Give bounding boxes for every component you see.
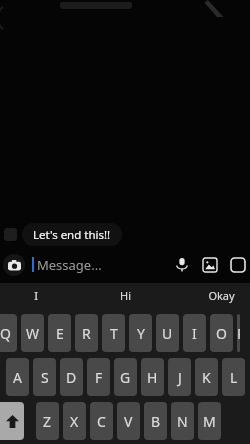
button[interactable]: P [237, 314, 240, 352]
button[interactable]: F [87, 358, 110, 396]
button[interactable]: K [195, 358, 218, 396]
button[interactable]: Okay [198, 283, 244, 308]
button[interactable]: J [168, 358, 191, 396]
staticText: Message... [37, 256, 102, 274]
button[interactable]: Voice message [170, 253, 194, 277]
staticText: G [120, 368, 131, 387]
button[interactable]: G [114, 358, 137, 396]
staticText: M [203, 412, 216, 431]
staticText: Z [43, 412, 52, 431]
button[interactable]: I [14, 283, 58, 308]
staticText: B [151, 412, 161, 431]
staticText: Okay [208, 288, 235, 303]
button[interactable]: S [33, 358, 56, 396]
button[interactable]: A [6, 358, 29, 396]
staticText: I [192, 324, 197, 343]
staticText: O [216, 324, 227, 343]
button[interactable]: Attach image [198, 253, 222, 277]
staticText: Y [137, 324, 145, 343]
button[interactable]: B [144, 402, 167, 440]
staticText: F [95, 368, 103, 387]
staticText: S [41, 368, 49, 387]
staticText: Let's end this!! [33, 227, 111, 243]
staticText: D [66, 368, 77, 387]
button[interactable]: L [222, 358, 245, 396]
button[interactable]: M [198, 402, 221, 440]
staticText: N [177, 412, 188, 431]
staticText: T [110, 324, 118, 343]
staticText: P [237, 324, 240, 343]
staticText: A [13, 368, 22, 387]
button[interactable]: Y [129, 314, 152, 352]
button[interactable]: Shift [0, 402, 24, 440]
button[interactable]: Open camera [3, 254, 25, 276]
button[interactable]: Let's end this!! [22, 223, 122, 246]
button[interactable]: W [21, 314, 44, 352]
staticText: W [26, 324, 40, 343]
staticText: X [70, 412, 79, 431]
button[interactable]: Hi [100, 283, 150, 308]
staticText: V [124, 412, 133, 431]
button[interactable]: H [141, 358, 164, 396]
button[interactable]: T [102, 314, 125, 352]
button[interactable]: X [63, 402, 86, 440]
staticText: H [147, 368, 158, 387]
staticText: C [97, 412, 106, 431]
button[interactable]: I [183, 314, 206, 352]
button[interactable]: Message... [37, 256, 170, 274]
button[interactable]: C [90, 402, 113, 440]
staticText: I [34, 288, 38, 303]
button[interactable]: Q [0, 314, 17, 352]
staticText: R [82, 324, 91, 343]
button[interactable]: D [60, 358, 83, 396]
button[interactable]: R [75, 314, 98, 352]
staticText: E [56, 324, 64, 343]
staticText: L [230, 368, 238, 387]
button[interactable]: Z [36, 402, 59, 440]
staticText: Hi [120, 288, 131, 303]
staticText: U [162, 324, 173, 343]
staticText: Q [0, 324, 11, 343]
button[interactable]: More options [226, 253, 250, 277]
staticText: J [178, 368, 182, 387]
button[interactable]: E [48, 314, 71, 352]
button[interactable]: U [156, 314, 179, 352]
button[interactable]: V [117, 402, 140, 440]
button[interactable]: O [210, 314, 233, 352]
staticText: K [202, 368, 211, 387]
button[interactable]: N [171, 402, 194, 440]
